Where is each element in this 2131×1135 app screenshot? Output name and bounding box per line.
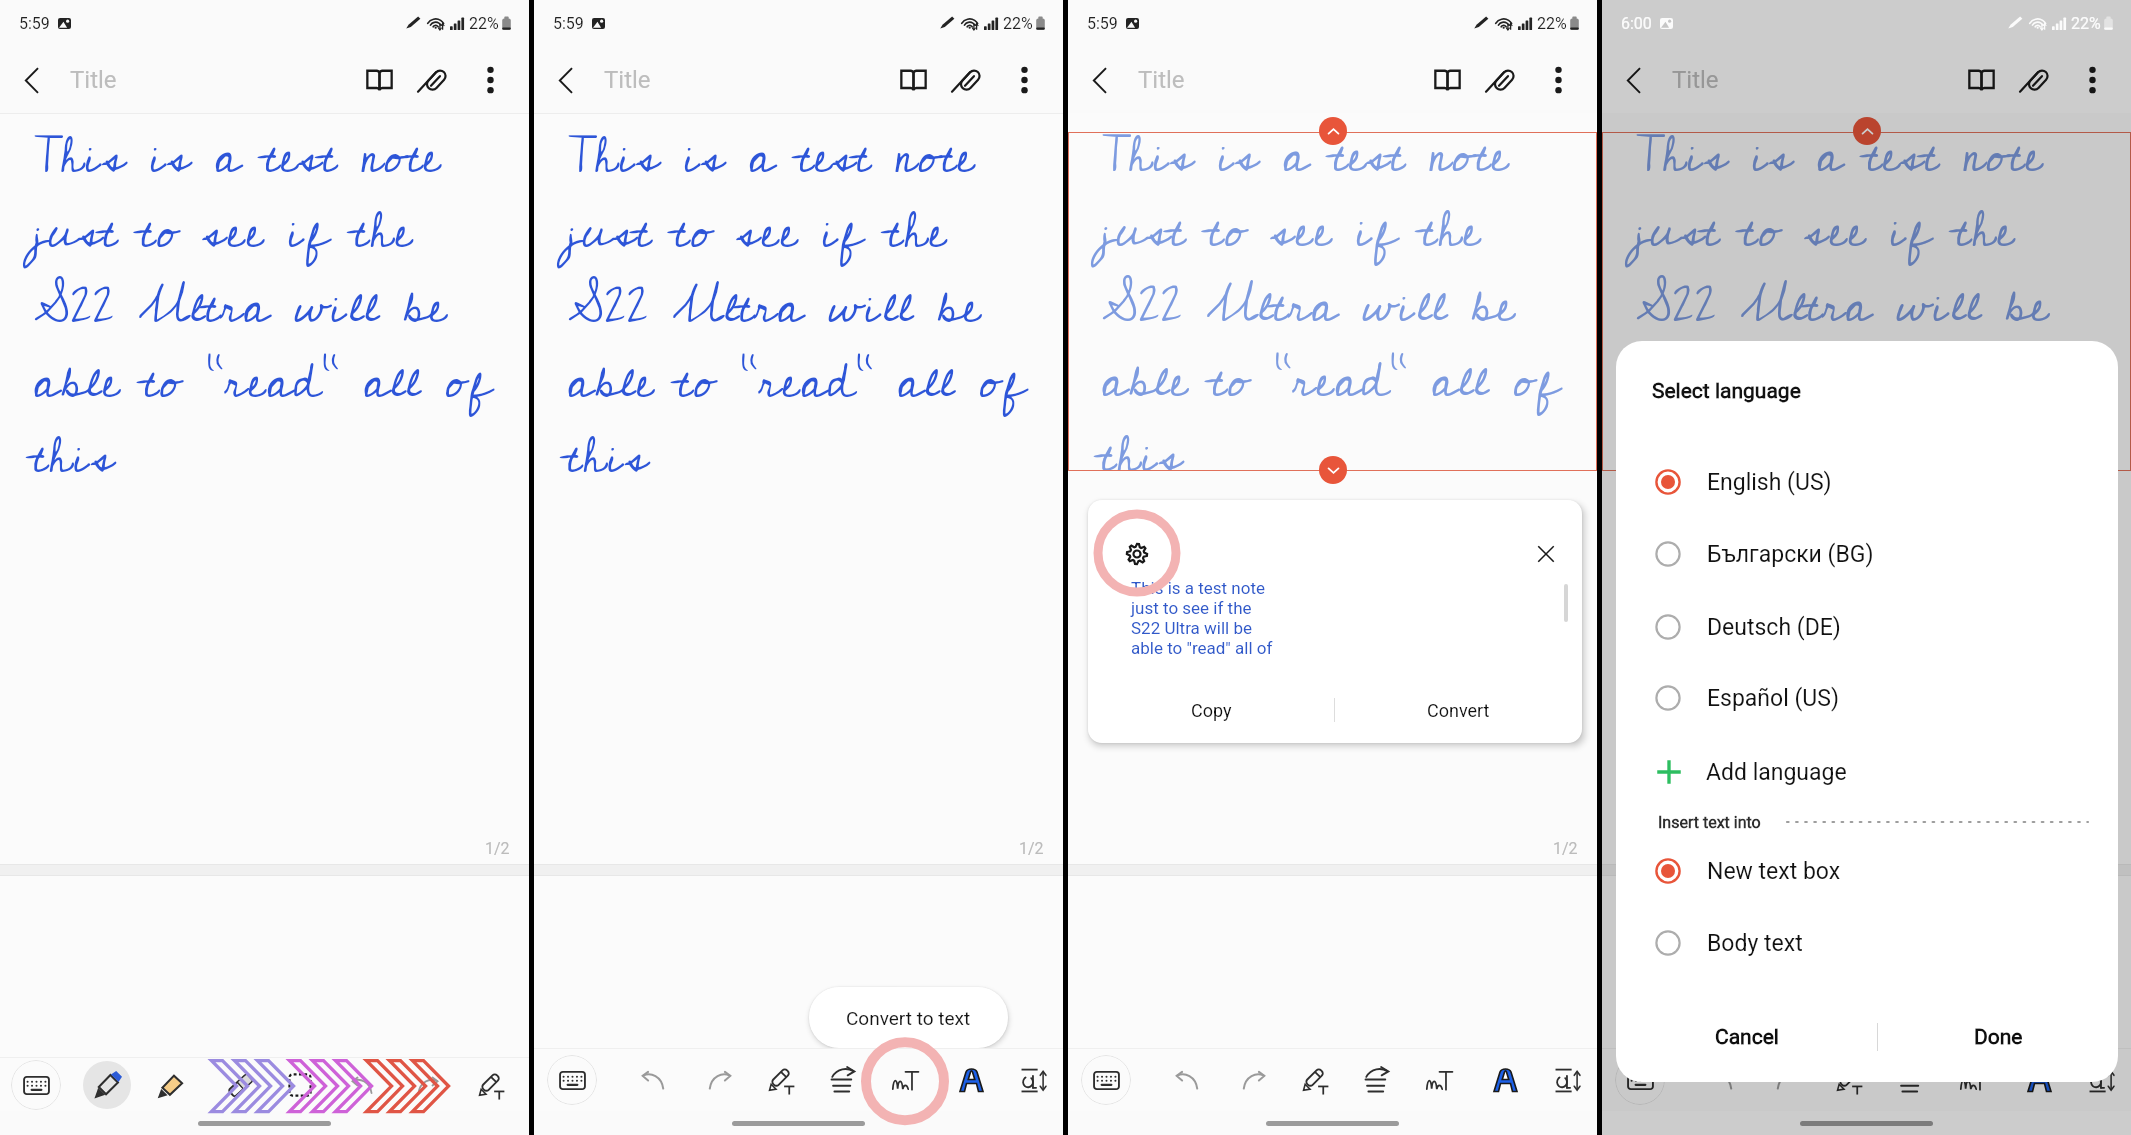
- button[interactable]: Convert to text: [882, 1057, 928, 1103]
- staticText: 22%: [469, 14, 499, 33]
- button[interactable]: Expand selection down: [1319, 456, 1347, 484]
- staticText: Select language: [1652, 379, 1801, 404]
- staticText: Deutsch (DE): [1707, 614, 1841, 641]
- staticText: 22%: [1003, 14, 1033, 33]
- button[interactable]: Auto shape: [948, 1057, 994, 1103]
- staticText: English (US): [1707, 469, 1832, 496]
- button[interactable]: Attach: [407, 50, 465, 110]
- button[interactable]: Español (US): [1616, 662, 2118, 734]
- button[interactable]: Keyboard: [11, 1060, 61, 1110]
- staticText: 6:00: [1621, 14, 1652, 33]
- staticText: 1/2: [1019, 839, 1044, 858]
- button[interactable]: Settings: [1115, 532, 1159, 576]
- button[interactable]: More options: [1533, 50, 1583, 110]
- button[interactable]: Auto shape: [2016, 1057, 2062, 1103]
- staticText: Español (US): [1707, 685, 1839, 712]
- button[interactable]: Highlighter: [147, 1062, 193, 1108]
- staticText: 5:59: [1087, 14, 1118, 33]
- staticText: just to see if the: [1131, 598, 1252, 618]
- staticText: 22%: [1537, 14, 1567, 33]
- button[interactable]: Keyboard: [1081, 1055, 1131, 1105]
- staticText: Title: [604, 66, 651, 94]
- button[interactable]: View mode: [351, 50, 407, 110]
- button[interactable]: Attach: [2009, 50, 2067, 110]
- staticText: Convert: [1427, 700, 1490, 721]
- button[interactable]: New text box: [1616, 835, 2118, 907]
- staticText: Add language: [1706, 759, 1847, 786]
- button[interactable]: Straighten text: [1889, 1057, 1935, 1103]
- button[interactable]: Cancel: [1616, 1004, 1877, 1070]
- button[interactable]: Pen settings: [1293, 1057, 1339, 1103]
- button[interactable]: Straighten text: [821, 1057, 867, 1103]
- button[interactable]: Convert to text: [1950, 1057, 1996, 1103]
- staticText: This is a test note just to see if the S…: [568, 112, 1029, 503]
- button[interactable]: Undo: [630, 1057, 676, 1103]
- button[interactable]: View mode: [1953, 50, 2009, 110]
- staticText: This is a test note just to see if the S…: [1636, 111, 2097, 502]
- staticText: 5:59: [19, 14, 50, 33]
- button[interactable]: Back: [534, 50, 596, 110]
- button[interactable]: Text size: [2079, 1057, 2125, 1103]
- button[interactable]: Auto shape: [1482, 1057, 1528, 1103]
- staticText: This is a test note just to see if the S…: [1102, 111, 1563, 502]
- button[interactable]: Redo: [404, 1062, 450, 1108]
- staticText: Body text: [1707, 930, 1803, 957]
- button[interactable]: Back: [1602, 50, 1664, 110]
- button[interactable]: Back: [0, 50, 62, 110]
- staticText: Insert text into: [1658, 813, 1761, 832]
- button[interactable]: Eraser: [217, 1062, 263, 1108]
- button[interactable]: View mode: [885, 50, 941, 110]
- button[interactable]: Text size: [1545, 1057, 1591, 1103]
- button[interactable]: Attach: [1475, 50, 1533, 110]
- button[interactable]: Pen settings: [1827, 1057, 1873, 1103]
- staticText: 1/2: [1553, 839, 1578, 858]
- staticText: S22 Ultra will be: [1131, 618, 1252, 638]
- button[interactable]: More options: [465, 50, 515, 110]
- button[interactable]: Undo: [1164, 1057, 1210, 1103]
- staticText: Title: [70, 66, 117, 94]
- button[interactable]: Redo: [696, 1057, 742, 1103]
- button[interactable]: Body text: [1616, 907, 2118, 979]
- button[interactable]: Expand selection up: [1319, 117, 1347, 145]
- button[interactable]: More options: [2067, 50, 2117, 110]
- button[interactable]: English (US): [1616, 446, 2118, 518]
- button[interactable]: Български (BG): [1616, 518, 2118, 590]
- staticText: New text box: [1707, 858, 1841, 885]
- staticText: 1/2: [485, 839, 510, 858]
- button[interactable]: Convert: [1335, 677, 1582, 743]
- button[interactable]: Back: [1068, 50, 1130, 110]
- button[interactable]: Deutsch (DE): [1616, 591, 2118, 663]
- button[interactable]: Redo: [1764, 1057, 1810, 1103]
- staticText: Convert to text: [846, 1007, 971, 1029]
- staticText: Cancel: [1715, 1025, 1779, 1050]
- button[interactable]: Keyboard: [547, 1055, 597, 1105]
- button[interactable]: Undo: [339, 1062, 385, 1108]
- staticText: This is a test note just to see if the S…: [34, 112, 495, 503]
- button[interactable]: Redo: [1230, 1057, 1276, 1103]
- button[interactable]: Convert to text: [1416, 1057, 1462, 1103]
- staticText: 5:59: [553, 14, 584, 33]
- button[interactable]: Straighten text: [1355, 1057, 1401, 1103]
- staticText: Title: [1672, 66, 1719, 94]
- button[interactable]: Text size: [1011, 1057, 1057, 1103]
- button[interactable]: Copy: [1088, 677, 1334, 743]
- staticText: Български (BG): [1707, 541, 1874, 568]
- button[interactable]: Close: [1524, 532, 1568, 576]
- button[interactable]: Undo: [1698, 1057, 1744, 1103]
- button[interactable]: Pen: [83, 1061, 131, 1109]
- button[interactable]: Keyboard: [1615, 1055, 1665, 1105]
- button[interactable]: Expand selection up: [1853, 117, 1881, 145]
- button[interactable]: View mode: [1419, 50, 1475, 110]
- staticText: This is a test note: [1131, 578, 1266, 598]
- button[interactable]: Done: [1878, 1004, 2118, 1070]
- button[interactable]: Attach: [941, 50, 999, 110]
- button[interactable]: Add language: [1616, 746, 2118, 798]
- staticText: able to "read" all of: [1131, 638, 1273, 658]
- button[interactable]: Select: [277, 1062, 323, 1108]
- staticText: 22%: [2071, 14, 2101, 33]
- staticText: Copy: [1191, 700, 1232, 721]
- button[interactable]: Convert to text: [469, 1062, 515, 1108]
- button[interactable]: More options: [999, 50, 1049, 110]
- button[interactable]: Pen settings: [759, 1057, 805, 1103]
